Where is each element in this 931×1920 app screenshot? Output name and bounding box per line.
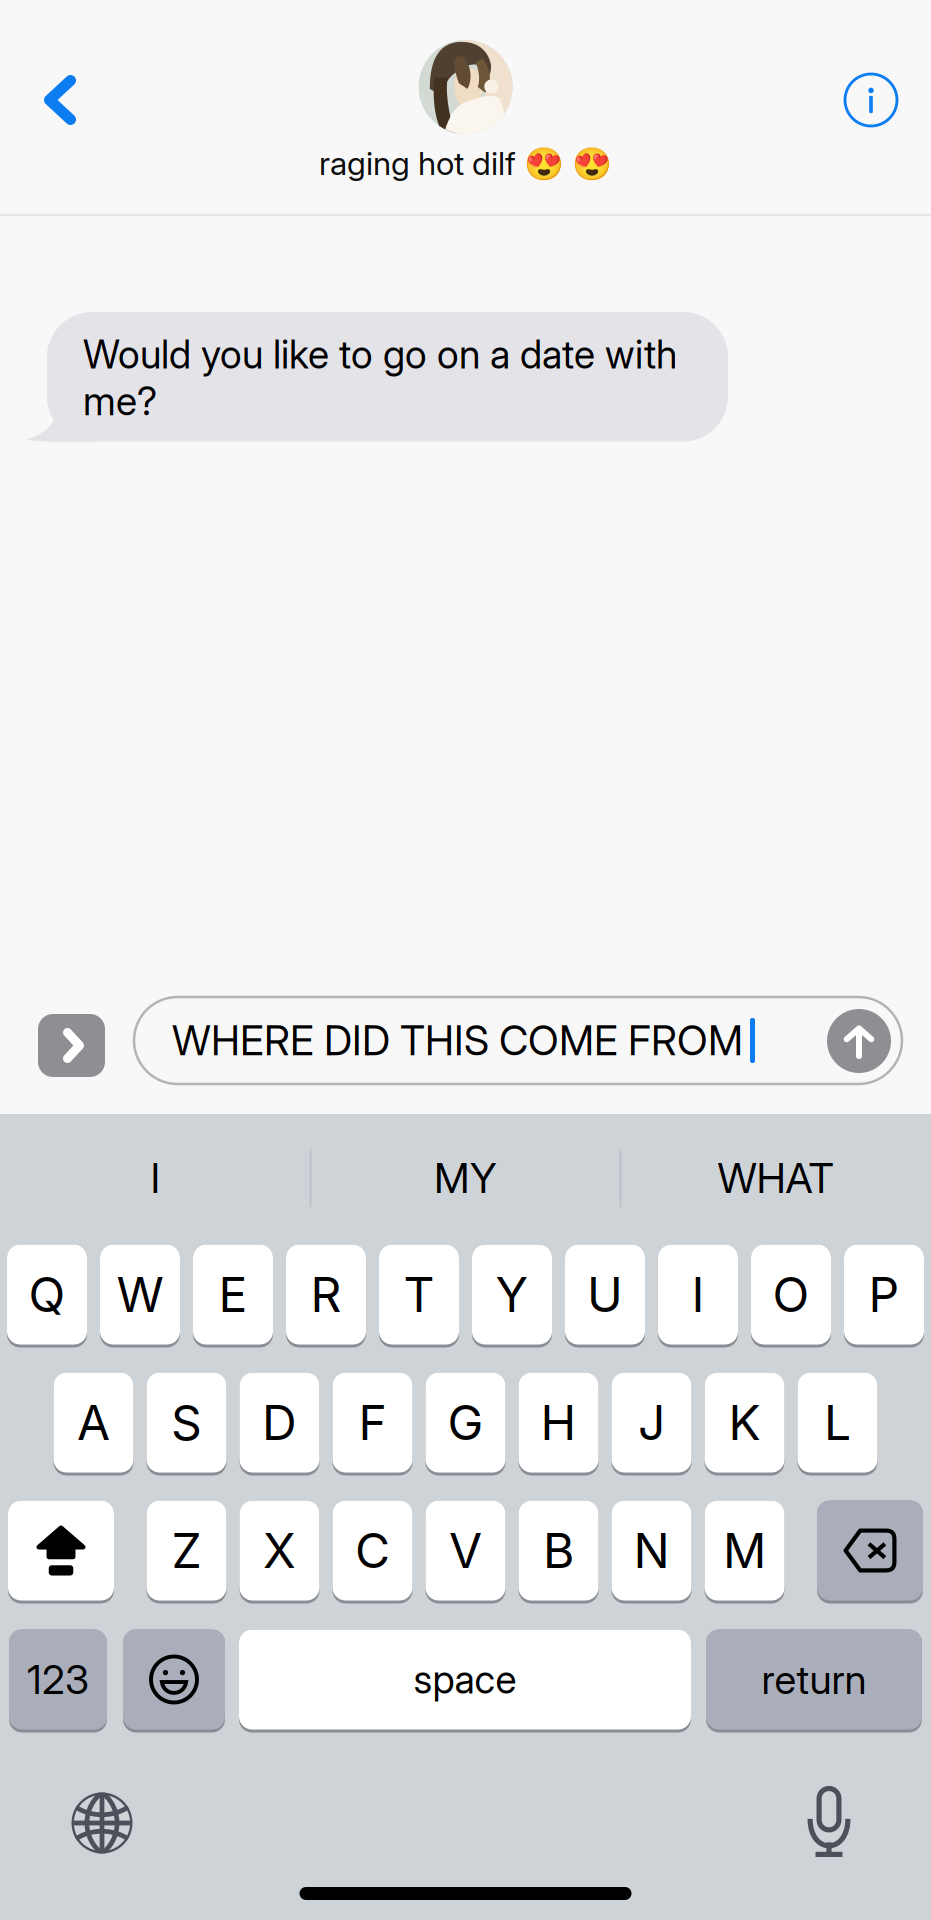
staticText: G bbox=[447, 1393, 483, 1452]
staticText: WHERE DID THIS COME FROM bbox=[172, 1016, 743, 1065]
staticText: raging hot dilf 😍 😍 bbox=[319, 144, 612, 183]
button[interactable]: Shift bbox=[8, 1499, 114, 1602]
button[interactable]: F bbox=[332, 1371, 412, 1474]
button[interactable]: Q bbox=[7, 1243, 87, 1346]
button[interactable]: return bbox=[706, 1628, 922, 1731]
button[interactable]: K bbox=[704, 1371, 784, 1474]
staticText: L bbox=[824, 1393, 851, 1452]
button[interactable]: V bbox=[425, 1499, 505, 1602]
staticText: U bbox=[587, 1265, 623, 1324]
staticText: return bbox=[761, 1655, 866, 1704]
button[interactable]: P bbox=[844, 1243, 924, 1346]
button[interactable]: J bbox=[611, 1371, 691, 1474]
button[interactable]: Delete bbox=[817, 1499, 923, 1602]
staticText: F bbox=[358, 1393, 386, 1452]
button[interactable]: R bbox=[286, 1243, 366, 1346]
button[interactable]: E bbox=[193, 1243, 273, 1346]
button[interactable]: space bbox=[239, 1628, 691, 1731]
button[interactable]: Z bbox=[146, 1499, 226, 1602]
button[interactable]: G bbox=[425, 1371, 505, 1474]
button[interactable]: U bbox=[565, 1243, 645, 1346]
button[interactable]: N bbox=[611, 1499, 691, 1602]
staticText: O bbox=[772, 1265, 809, 1324]
staticText: E bbox=[218, 1265, 247, 1324]
button[interactable]: L bbox=[797, 1371, 877, 1474]
staticText: A bbox=[77, 1393, 110, 1452]
button[interactable]: Emoji bbox=[123, 1628, 225, 1731]
staticText: P bbox=[868, 1265, 899, 1324]
staticText: 123 bbox=[27, 1655, 89, 1704]
staticText: I bbox=[691, 1265, 704, 1324]
staticText: M bbox=[723, 1521, 766, 1580]
button[interactable]: Dictate bbox=[779, 1773, 879, 1873]
staticText: B bbox=[543, 1521, 574, 1580]
staticText: Z bbox=[171, 1521, 201, 1580]
staticText: V bbox=[449, 1521, 482, 1580]
staticText: D bbox=[262, 1393, 297, 1452]
staticText: space bbox=[413, 1656, 516, 1703]
staticText: N bbox=[633, 1521, 669, 1580]
button[interactable]: App Store bbox=[38, 1014, 105, 1077]
staticText: Y bbox=[495, 1265, 528, 1324]
staticText: T bbox=[403, 1265, 434, 1324]
button[interactable]: I bbox=[1, 1114, 309, 1242]
button[interactable]: W bbox=[100, 1243, 180, 1346]
button[interactable]: Details bbox=[811, 45, 931, 155]
button[interactable]: Y bbox=[472, 1243, 552, 1346]
button[interactable]: X bbox=[239, 1499, 319, 1602]
button[interactable]: S bbox=[146, 1371, 226, 1474]
button[interactable]: WHAT bbox=[621, 1114, 929, 1242]
button[interactable]: Back bbox=[0, 45, 120, 155]
staticText: Q bbox=[28, 1265, 65, 1324]
button[interactable]: T bbox=[379, 1243, 459, 1346]
button[interactable]: 123 bbox=[9, 1628, 107, 1731]
button[interactable]: MY bbox=[311, 1114, 619, 1242]
staticText: R bbox=[310, 1265, 341, 1324]
staticText: K bbox=[728, 1393, 760, 1452]
staticText: H bbox=[540, 1393, 576, 1452]
button[interactable]: Next keyboard bbox=[52, 1773, 152, 1873]
staticText: C bbox=[355, 1521, 390, 1580]
button[interactable]: Send bbox=[827, 1009, 891, 1073]
button[interactable]: I bbox=[658, 1243, 738, 1346]
staticText: J bbox=[638, 1393, 665, 1452]
button[interactable]: O bbox=[751, 1243, 831, 1346]
button[interactable]: M bbox=[704, 1499, 784, 1602]
staticText: W bbox=[116, 1265, 163, 1324]
button[interactable]: D bbox=[239, 1371, 319, 1474]
staticText: I bbox=[150, 1153, 160, 1203]
button[interactable]: A bbox=[53, 1371, 133, 1474]
staticText: MY bbox=[434, 1153, 497, 1203]
staticText: WHAT bbox=[717, 1153, 833, 1203]
button[interactable]: C bbox=[332, 1499, 412, 1602]
staticText: X bbox=[263, 1521, 296, 1580]
staticText: Would you like to go on a date with me? bbox=[83, 331, 677, 425]
button[interactable]: H bbox=[518, 1371, 598, 1474]
button[interactable]: B bbox=[518, 1499, 598, 1602]
staticText: S bbox=[171, 1393, 202, 1452]
